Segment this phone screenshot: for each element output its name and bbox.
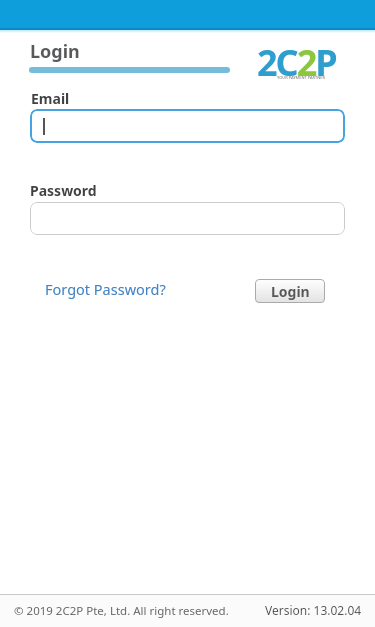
button[interactable]: Login	[255, 279, 325, 303]
staticText: Login	[30, 39, 80, 64]
staticText: Password	[30, 181, 97, 200]
staticText: Forgot Password?	[45, 279, 166, 299]
staticText: Login	[271, 282, 310, 301]
button[interactable]	[30, 109, 345, 143]
button[interactable]: Forgot Password?	[45, 279, 166, 299]
staticText: © 2019 2C2P Pte, Ltd. All right reserved…	[14, 603, 229, 619]
button[interactable]	[30, 202, 345, 235]
staticText: 2C2P	[257, 38, 336, 87]
staticText: Email	[31, 89, 70, 108]
staticText: Version: 13.02.04	[265, 602, 362, 618]
staticText: YOUR PAYMENT PARTNER	[277, 75, 325, 80]
